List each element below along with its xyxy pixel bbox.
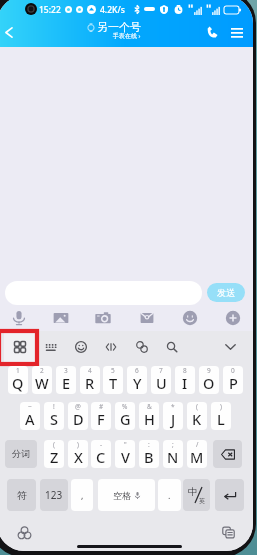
button[interactable]: 9 xyxy=(199,366,219,394)
staticText: E xyxy=(62,373,71,393)
button[interactable]: Attachment xyxy=(130,335,154,359)
button[interactable]: 7 xyxy=(151,366,171,394)
button[interactable]: Camera xyxy=(92,307,114,329)
staticText: 另一个号 xyxy=(97,20,141,34)
button[interactable]: 3 xyxy=(56,366,76,394)
staticText: K xyxy=(192,409,202,429)
button[interactable]: , xyxy=(71,479,93,511)
staticText: - xyxy=(100,440,103,449)
button[interactable]: Backspace xyxy=(213,440,242,468)
button[interactable]: / xyxy=(187,440,207,468)
button[interactable] xyxy=(5,281,202,305)
staticText: 5 xyxy=(111,366,115,375)
button[interactable]: Keyboard layout xyxy=(39,335,63,359)
button[interactable]: 5 xyxy=(103,366,123,394)
staticText: 分词 xyxy=(12,448,31,460)
staticText: 发送 xyxy=(217,287,235,298)
staticText: 2 xyxy=(40,366,44,375)
button[interactable]: 空格 xyxy=(98,479,155,511)
button[interactable]: & xyxy=(139,402,159,430)
button[interactable]: Photos xyxy=(50,307,72,329)
button[interactable]: - xyxy=(91,440,111,468)
staticText: Q xyxy=(12,373,24,393)
button[interactable]: 2 xyxy=(32,366,52,394)
staticText: % xyxy=(122,402,128,411)
button[interactable]: Emoji xyxy=(179,307,201,329)
button[interactable]: 分词 xyxy=(5,440,37,468)
button[interactable]: Theme xyxy=(13,521,35,543)
staticText: 中 xyxy=(188,486,198,498)
staticText: ( xyxy=(196,402,198,411)
staticText: . xyxy=(168,489,171,501)
button[interactable]: Enter xyxy=(215,479,244,511)
button[interactable]: * xyxy=(163,402,183,430)
staticText: " xyxy=(124,440,127,449)
button[interactable]: ) xyxy=(211,402,231,430)
button[interactable]: " xyxy=(115,440,135,468)
button[interactable]: @ xyxy=(68,402,88,430)
button[interactable]: Clipboard xyxy=(217,521,239,543)
staticText: D xyxy=(73,409,84,429)
staticText: T xyxy=(109,373,118,393)
staticText: 7 xyxy=(159,366,163,375)
staticText: ) xyxy=(77,440,79,449)
button[interactable]: ) xyxy=(68,440,88,468)
staticText: ) xyxy=(220,402,222,411)
staticText: N xyxy=(167,447,179,467)
staticText: 9 xyxy=(207,366,211,375)
staticText: O xyxy=(203,373,215,393)
button[interactable]: . xyxy=(158,479,181,511)
button[interactable]: Emoji xyxy=(69,335,93,359)
staticText: 15:22 xyxy=(39,4,61,16)
button[interactable]: 符 xyxy=(7,479,36,511)
staticText: 符 xyxy=(17,489,27,502)
staticText: L xyxy=(217,409,225,429)
staticText: 123 xyxy=(45,488,63,502)
staticText: 4.2K/s xyxy=(100,4,125,16)
staticText: Z xyxy=(50,447,59,467)
staticText: 8 xyxy=(183,366,187,375)
button[interactable]: # xyxy=(91,402,111,430)
staticText: ~ xyxy=(28,402,32,411)
button[interactable]: Switch language xyxy=(183,479,210,511)
button[interactable]: 1 xyxy=(8,366,28,394)
button[interactable]: ( xyxy=(44,440,64,468)
button[interactable]: ~ xyxy=(20,402,40,430)
button[interactable]: 0 xyxy=(223,366,243,394)
button[interactable]: Call xyxy=(200,19,225,44)
button[interactable]: Search xyxy=(160,335,184,359)
staticText: U xyxy=(156,373,167,393)
staticText: F xyxy=(97,409,105,429)
button[interactable]: ; xyxy=(163,440,183,468)
button[interactable]: ! xyxy=(44,402,64,430)
button[interactable]: 4 xyxy=(80,366,100,394)
button[interactable]: % xyxy=(115,402,135,430)
staticText: M xyxy=(190,447,204,467)
staticText: V xyxy=(121,447,130,467)
staticText: 3 xyxy=(64,366,68,375)
staticText: I xyxy=(182,373,188,393)
button[interactable]: : xyxy=(139,440,159,468)
staticText: ! xyxy=(53,402,55,411)
button[interactable]: Sticker panel xyxy=(8,335,32,359)
staticText: H xyxy=(144,409,155,429)
button[interactable]: More xyxy=(222,307,244,329)
button[interactable]: Menu xyxy=(224,19,249,44)
button[interactable]: 发送 xyxy=(207,283,245,302)
button[interactable]: Voice changer xyxy=(99,335,123,359)
staticText: : xyxy=(148,440,150,449)
button[interactable]: Hide keyboard xyxy=(218,335,242,359)
staticText: 4 xyxy=(88,366,92,375)
staticText: 1 xyxy=(16,366,20,375)
staticText: ; xyxy=(172,440,174,449)
button[interactable]: 123 xyxy=(40,479,68,511)
staticText: 0 xyxy=(231,366,235,375)
button[interactable]: Red packet xyxy=(136,307,158,329)
staticText: 英 xyxy=(199,497,205,505)
button[interactable]: Voice input xyxy=(8,307,30,329)
button[interactable]: 8 xyxy=(175,366,195,394)
button[interactable]: ( xyxy=(187,402,207,430)
button[interactable]: Back xyxy=(0,18,25,47)
staticText: * xyxy=(171,402,175,411)
button[interactable]: 6 xyxy=(127,366,147,394)
